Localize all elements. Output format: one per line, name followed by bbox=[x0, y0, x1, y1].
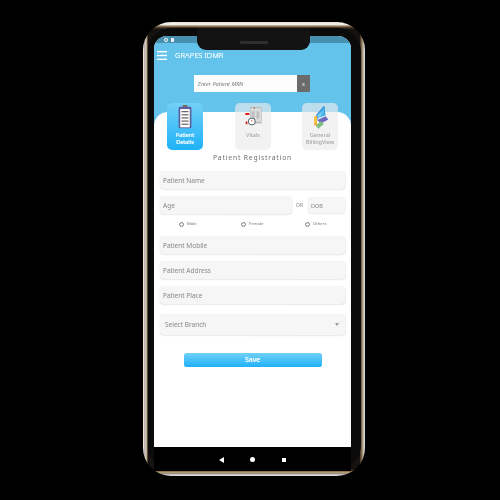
button[interactable]: Patient Mobile bbox=[160, 236, 345, 254]
staticText: DOB bbox=[311, 202, 323, 209]
button[interactable]: General BillingView bbox=[302, 103, 338, 150]
button[interactable]: Patient Place bbox=[160, 286, 345, 304]
button[interactable]: Save bbox=[184, 353, 322, 367]
staticText: Patient Mobile bbox=[163, 241, 208, 250]
staticText: Female bbox=[249, 221, 264, 227]
staticText: General BillingView bbox=[302, 131, 338, 145]
button[interactable]: Enter Patient MRN bbox=[194, 75, 297, 92]
button[interactable]: Patient Name bbox=[160, 171, 345, 189]
staticText: Patient Name bbox=[163, 176, 205, 185]
button[interactable]: Male bbox=[179, 219, 197, 229]
staticText: Enter Patient MRN bbox=[198, 80, 244, 88]
button[interactable]: Recents bbox=[277, 453, 290, 466]
staticText: Male bbox=[187, 221, 197, 227]
staticText: Save bbox=[245, 355, 261, 365]
staticText: Patient Address bbox=[163, 266, 211, 275]
staticText: Select Branch bbox=[165, 320, 207, 329]
button[interactable]: Open navigation menu bbox=[154, 47, 170, 63]
staticText: Vitals bbox=[235, 131, 271, 138]
button[interactable]: Female bbox=[241, 219, 264, 229]
button[interactable]: Back bbox=[215, 453, 228, 466]
staticText: GRAPES IDMR bbox=[175, 50, 224, 60]
staticText: OR bbox=[296, 202, 304, 209]
staticText: Patient Details bbox=[167, 131, 203, 145]
staticText: Others bbox=[313, 221, 327, 227]
button[interactable]: Vitals bbox=[235, 103, 271, 150]
button[interactable]: DOB bbox=[308, 197, 345, 213]
button[interactable]: Patient Details bbox=[167, 103, 203, 150]
staticText: x bbox=[302, 80, 305, 87]
button[interactable]: Patient Address bbox=[160, 261, 345, 279]
button[interactable]: Age bbox=[160, 196, 292, 214]
staticText: Patient Place bbox=[163, 291, 203, 300]
button[interactable]: Clear search bbox=[297, 75, 310, 92]
staticText: Patient Registration bbox=[154, 153, 351, 162]
button[interactable]: Select Branch bbox=[160, 314, 345, 335]
button[interactable]: Others bbox=[305, 219, 327, 229]
staticText: Age bbox=[163, 201, 175, 210]
button[interactable]: Home bbox=[246, 453, 259, 466]
